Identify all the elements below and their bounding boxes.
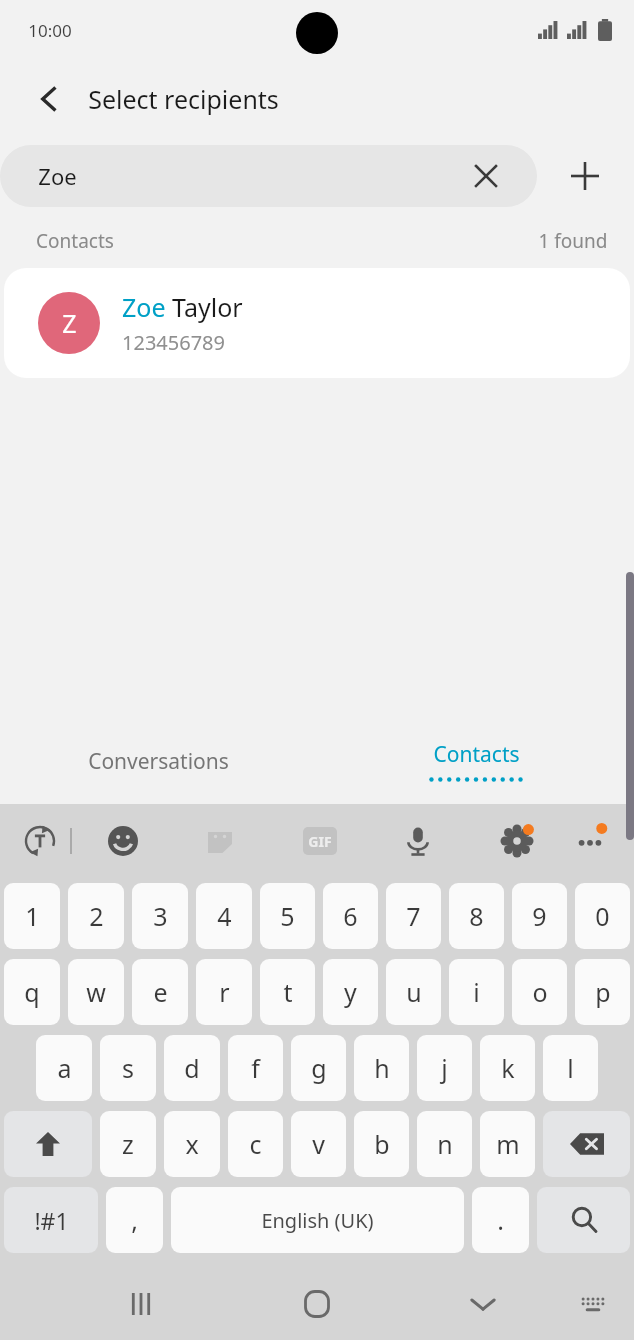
button[interactable]: r	[196, 959, 252, 1025]
staticText: .	[497, 1203, 504, 1237]
button[interactable]: GIF	[298, 819, 342, 863]
button[interactable]: 0	[575, 883, 630, 949]
staticText: o	[532, 975, 548, 1009]
button[interactable]: i	[449, 959, 504, 1025]
staticText: h	[374, 1051, 390, 1085]
button[interactable]: Contacts	[317, 718, 634, 804]
staticText: 0	[595, 899, 610, 933]
button[interactable]: Voice input	[396, 819, 440, 863]
button[interactable]: Stickers	[198, 819, 242, 863]
button[interactable]: Home	[288, 1275, 346, 1333]
button[interactable]: 7	[386, 883, 441, 949]
button[interactable]: f	[228, 1035, 283, 1101]
staticText: r	[219, 975, 230, 1009]
button[interactable]: Conversations	[0, 718, 317, 804]
button[interactable]: x	[164, 1111, 220, 1177]
staticText: b	[374, 1127, 390, 1161]
button[interactable]: More options	[568, 819, 612, 863]
button[interactable]: m	[480, 1111, 535, 1177]
button[interactable]: s	[100, 1035, 156, 1101]
staticText: Zoe	[38, 161, 77, 191]
button[interactable]: z	[100, 1111, 156, 1177]
staticText: a	[57, 1051, 72, 1085]
staticText: English (UK)	[261, 1207, 374, 1234]
button[interactable]: 3	[132, 883, 188, 949]
button[interactable]: Emoji	[101, 819, 145, 863]
button[interactable]: Shift	[4, 1111, 92, 1177]
button[interactable]: a	[36, 1035, 92, 1101]
button[interactable]: Comma	[106, 1187, 163, 1253]
button[interactable]: 4	[196, 883, 252, 949]
staticText: i	[473, 975, 480, 1009]
button[interactable]: Backspace	[543, 1111, 630, 1177]
staticText: w	[86, 975, 106, 1009]
button[interactable]: Recent apps	[112, 1275, 170, 1333]
staticText: 9	[532, 899, 547, 933]
staticText: 2	[89, 899, 104, 933]
staticText: n	[437, 1127, 453, 1161]
staticText: f	[251, 1051, 260, 1085]
staticText: Contacts	[36, 228, 114, 254]
button[interactable]: Zoe	[0, 145, 537, 207]
button[interactable]: Period	[472, 1187, 529, 1253]
button[interactable]: v	[291, 1111, 346, 1177]
button[interactable]: g	[291, 1035, 346, 1101]
button[interactable]: l	[543, 1035, 598, 1101]
staticText: x	[185, 1127, 199, 1161]
staticText: GIF	[308, 832, 332, 851]
button[interactable]: Clear text	[465, 155, 507, 197]
staticText: ,	[131, 1203, 138, 1237]
staticText: e	[153, 975, 168, 1009]
button[interactable]: u	[386, 959, 441, 1025]
button[interactable]: h	[354, 1035, 409, 1101]
staticText: m	[496, 1127, 520, 1161]
staticText: t	[283, 975, 293, 1009]
staticText: 123456789	[122, 329, 225, 356]
button[interactable]: Keyboard settings	[495, 819, 539, 863]
button[interactable]: 8	[449, 883, 504, 949]
button[interactable]: t	[260, 959, 315, 1025]
staticText: Select recipients	[88, 82, 279, 116]
staticText: j	[441, 1051, 448, 1085]
staticText: 8	[469, 899, 484, 933]
staticText: 5	[280, 899, 295, 933]
button[interactable]: 9	[512, 883, 567, 949]
button[interactable]: 1	[4, 883, 60, 949]
staticText: !#1	[34, 1205, 69, 1236]
button[interactable]: k	[480, 1035, 535, 1101]
button[interactable]: Z	[4, 268, 630, 378]
button[interactable]: Switch keyboard	[568, 1279, 618, 1329]
button[interactable]: y	[323, 959, 378, 1025]
button[interactable]: Search	[537, 1187, 630, 1253]
button[interactable]: 2	[68, 883, 124, 949]
staticText: k	[501, 1051, 515, 1085]
staticText: 7	[406, 899, 421, 933]
staticText: Zoe Taylor	[122, 290, 243, 324]
button[interactable]: c	[228, 1111, 283, 1177]
button[interactable]: Space	[171, 1187, 464, 1253]
staticText: d	[184, 1051, 200, 1085]
button[interactable]: e	[132, 959, 188, 1025]
button[interactable]: w	[68, 959, 124, 1025]
staticText: s	[122, 1051, 134, 1085]
button[interactable]: Back	[22, 72, 76, 126]
staticText: Conversations	[88, 747, 229, 776]
button[interactable]: n	[417, 1111, 472, 1177]
button[interactable]: b	[354, 1111, 409, 1177]
button[interactable]: j	[417, 1035, 472, 1101]
button[interactable]: 6	[323, 883, 378, 949]
button[interactable]: Hide keyboard	[454, 1275, 512, 1333]
button[interactable]: Add recipient	[554, 145, 616, 207]
staticText: c	[249, 1127, 262, 1161]
staticText: v	[312, 1127, 325, 1161]
staticText: y	[344, 975, 357, 1009]
button[interactable]: o	[512, 959, 567, 1025]
button[interactable]: 5	[260, 883, 315, 949]
button[interactable]: q	[4, 959, 60, 1025]
button[interactable]: Symbols	[4, 1187, 98, 1253]
staticText: 3	[153, 899, 168, 933]
button[interactable]: Translate	[18, 819, 62, 863]
button[interactable]: d	[164, 1035, 220, 1101]
staticText: Z	[62, 306, 77, 340]
button[interactable]: p	[575, 959, 630, 1025]
